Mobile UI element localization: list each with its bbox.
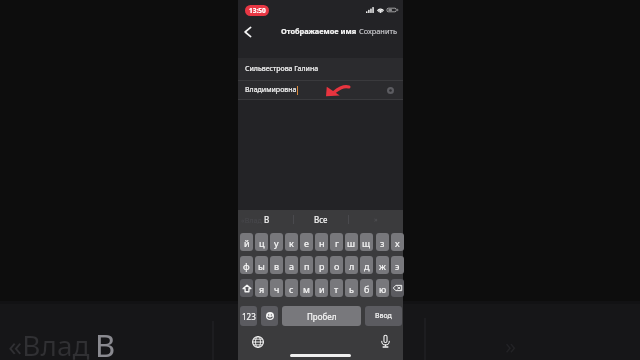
staticText: Все xyxy=(314,214,328,225)
button[interactable]: Пробел xyxy=(282,306,361,326)
button[interactable]: л xyxy=(345,256,358,274)
staticText: в xyxy=(274,260,280,272)
staticText: ы xyxy=(258,260,265,272)
button[interactable]: н xyxy=(315,233,328,251)
staticText: л xyxy=(349,260,355,272)
button[interactable]: ц xyxy=(255,233,268,251)
button[interactable]: Ввод xyxy=(365,306,402,326)
staticText: у xyxy=(274,237,279,249)
staticText: 13:50 xyxy=(249,6,266,15)
staticText: Сильвестрова Галина xyxy=(245,64,319,74)
button[interactable]: Все xyxy=(294,210,348,229)
staticText: и xyxy=(319,283,325,295)
button[interactable]: т xyxy=(330,279,343,297)
staticText: Пробел xyxy=(307,311,337,322)
staticText: с xyxy=(289,283,294,295)
button[interactable]: й xyxy=(240,233,253,251)
button[interactable]: б xyxy=(360,279,373,297)
staticText: м xyxy=(303,283,310,295)
button[interactable]: Владимировна xyxy=(238,81,403,99)
button[interactable]: ф xyxy=(240,256,253,274)
staticText: «Влад xyxy=(241,215,262,225)
staticText: В xyxy=(264,214,270,225)
staticText: ч xyxy=(274,283,280,295)
button[interactable]: г xyxy=(330,233,343,251)
staticText: х xyxy=(395,237,400,249)
staticText: р xyxy=(319,260,325,272)
staticText: » xyxy=(505,330,517,360)
staticText: е xyxy=(304,237,309,249)
button[interactable]: щ xyxy=(360,233,373,251)
button[interactable]: Emoji xyxy=(261,306,278,326)
button[interactable]: с xyxy=(285,279,298,297)
button[interactable]: д xyxy=(360,256,373,274)
staticText: й xyxy=(244,237,250,249)
button[interactable]: х xyxy=(391,233,404,251)
staticText: ф xyxy=(243,260,250,272)
button[interactable]: ы xyxy=(255,256,268,274)
staticText: ш xyxy=(347,237,356,249)
staticText: т xyxy=(334,283,339,295)
staticText: п xyxy=(304,260,310,272)
staticText: а xyxy=(289,260,295,272)
staticText: к xyxy=(289,237,294,249)
button[interactable]: з xyxy=(376,233,389,251)
staticText: ю xyxy=(379,283,387,295)
button[interactable]: к xyxy=(285,233,298,251)
button[interactable]: ж xyxy=(376,256,389,274)
button[interactable]: ь xyxy=(345,279,358,297)
button[interactable]: Сохранить xyxy=(359,26,397,36)
button[interactable]: р xyxy=(315,256,328,274)
button[interactable]: Сильвестрова Галина xyxy=(238,58,403,80)
staticText: о xyxy=(334,260,340,272)
staticText: д xyxy=(364,260,370,272)
button[interactable]: Back xyxy=(239,23,257,41)
staticText: г xyxy=(335,237,339,249)
staticText: э xyxy=(395,260,400,272)
button[interactable]: ч xyxy=(270,279,283,297)
button[interactable]: я xyxy=(255,279,268,297)
staticText: ж xyxy=(379,260,386,272)
staticText: щ xyxy=(362,237,371,249)
staticText: з xyxy=(380,237,385,249)
staticText: я xyxy=(259,283,265,295)
staticText: ц xyxy=(259,237,265,249)
staticText: 123 xyxy=(242,311,256,322)
button[interactable]: Backspace xyxy=(391,279,404,297)
staticText: В xyxy=(95,324,116,360)
staticText: Сохранить xyxy=(359,26,397,36)
button[interactable]: е xyxy=(300,233,313,251)
staticText: Отображаемое имя xyxy=(281,26,357,36)
staticText: б xyxy=(364,283,370,295)
button[interactable]: 123 xyxy=(240,306,257,326)
button[interactable]: и xyxy=(315,279,328,297)
staticText: Владимировна xyxy=(245,85,297,95)
button[interactable]: в xyxy=(270,256,283,274)
button[interactable]: ш xyxy=(345,233,358,251)
staticText: ь xyxy=(349,283,354,295)
staticText: Ввод xyxy=(375,311,392,321)
button[interactable]: «Влад xyxy=(238,210,293,229)
button[interactable]: Change keyboard language xyxy=(251,335,265,349)
button[interactable]: о xyxy=(330,256,343,274)
button[interactable]: Voice input xyxy=(378,334,392,348)
staticText: «Влад xyxy=(8,326,90,360)
button[interactable]: у xyxy=(270,233,283,251)
button[interactable]: ю xyxy=(376,279,389,297)
button[interactable]: Shift xyxy=(240,279,253,297)
button[interactable]: п xyxy=(300,256,313,274)
staticText: » xyxy=(374,215,378,225)
button[interactable]: м xyxy=(300,279,313,297)
button[interactable]: Clear text xyxy=(385,85,396,96)
button[interactable]: э xyxy=(391,256,404,274)
button[interactable]: а xyxy=(285,256,298,274)
staticText: н xyxy=(319,237,325,249)
